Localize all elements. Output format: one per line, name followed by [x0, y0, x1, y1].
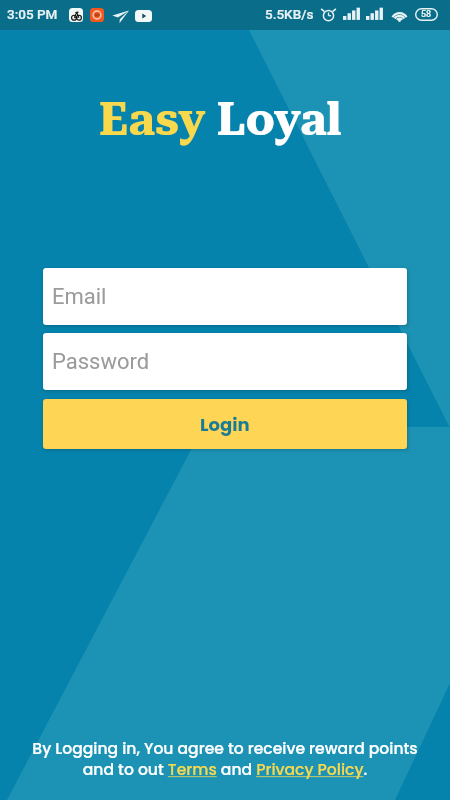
- staticText: Easy Loyal: [99, 93, 342, 146]
- staticText: Password: [52, 349, 150, 375]
- button[interactable]: Email: [43, 268, 407, 325]
- button[interactable]: Password: [43, 333, 407, 390]
- staticText: 3:05 PM: [7, 6, 58, 22]
- staticText: 5.5KB/s: [265, 6, 314, 22]
- button[interactable]: Login: [43, 399, 407, 449]
- staticText: Login: [200, 412, 250, 437]
- staticText: Email: [52, 284, 107, 310]
- staticText: 58: [421, 9, 432, 20]
- staticText: By Logging in, You agree to receive rewa…: [32, 738, 418, 781]
